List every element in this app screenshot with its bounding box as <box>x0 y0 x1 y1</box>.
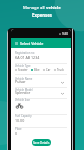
staticText: Scooter <box>18 68 28 72</box>
button[interactable]: Bike <box>31 68 40 72</box>
staticText: vehicle <box>46 5 61 11</box>
staticText: Registration no <box>15 51 35 55</box>
staticText: Place <box>15 127 22 131</box>
staticText: KA 01 AB 1234 <box>15 55 40 60</box>
staticText: Manage all <box>23 5 46 11</box>
staticText: Select Vehicle <box>20 41 44 46</box>
staticText: Vehicle Icon <box>15 98 31 102</box>
staticText: Truck <box>57 68 64 72</box>
staticText: Pulsar <box>15 79 26 84</box>
button[interactable]: Car <box>43 68 51 72</box>
staticText: Fuel Capacity <box>15 114 32 118</box>
button[interactable]: Truck <box>54 68 64 72</box>
button[interactable]: Scooter <box>15 68 28 72</box>
staticText: Expenses <box>32 12 52 18</box>
staticText: 10.00 <box>15 118 25 123</box>
button[interactable]: Save Details <box>32 139 51 146</box>
staticText: Vehicle Name <box>15 77 33 81</box>
staticText: Bike <box>34 68 40 72</box>
staticText: Splendor <box>15 90 31 95</box>
button[interactable]: Menu <box>13 40 19 46</box>
staticText: 9:30 <box>62 32 68 36</box>
staticText: Vehicle Model <box>15 88 33 92</box>
staticText: Vehicle Type <box>15 64 31 68</box>
staticText: 0 <box>15 131 18 136</box>
staticText: Car <box>46 68 51 72</box>
staticText: Save Details <box>33 141 50 145</box>
